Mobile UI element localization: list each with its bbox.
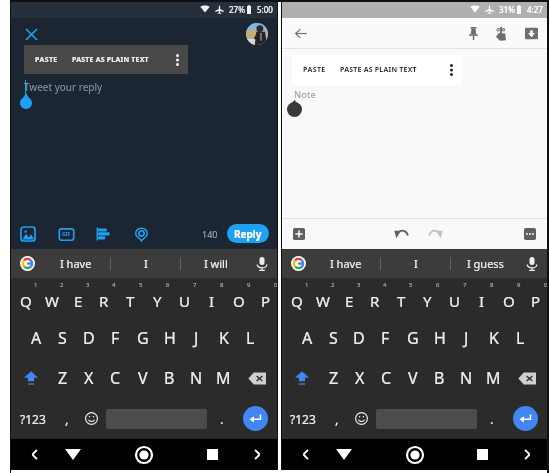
button[interactable]: Shift [282,358,321,398]
button[interactable]: 8 [466,278,493,318]
button[interactable]: 0 [250,278,277,318]
button[interactable]: I have [41,249,110,278]
button[interactable]: More options [440,55,462,85]
button[interactable]: 9 [223,278,250,318]
button[interactable]: Emoji [349,398,374,439]
button[interactable]: H [426,318,453,358]
button[interactable]: 5 [115,278,142,318]
button[interactable]: L [237,318,264,358]
button[interactable]: D [346,318,372,358]
button[interactable]: . [479,398,504,439]
button[interactable]: 4 [89,278,115,318]
button[interactable]: V [129,358,156,398]
button[interactable]: 1 [11,278,37,318]
button[interactable]: Close [20,23,43,46]
button[interactable]: Voice input [250,252,274,276]
button[interactable]: Add location [131,224,151,244]
button[interactable]: K [210,318,237,358]
button[interactable]: K [480,318,507,358]
button[interactable]: ?123 [11,398,54,439]
button[interactable]: Emoji [79,398,104,439]
button[interactable]: F [102,318,129,358]
button[interactable]: Space [104,398,209,439]
button[interactable]: 2 [37,278,63,318]
button[interactable]: Next [515,439,539,470]
button[interactable]: Previous [21,439,47,470]
button[interactable]: 1 [282,278,308,318]
button[interactable]: H [156,318,183,358]
button[interactable]: PASTE [24,45,69,74]
button[interactable]: Reply [227,224,269,243]
button[interactable]: J [453,318,480,358]
button[interactable]: 7 [169,278,196,318]
button[interactable]: Add poll [93,224,113,244]
button[interactable]: I guess [451,249,520,278]
button[interactable]: X [347,358,373,398]
button[interactable]: 3 [334,278,360,318]
button[interactable]: B [156,358,183,398]
button[interactable]: M [210,358,237,398]
button[interactable]: Add GIF [56,224,76,244]
button[interactable]: Back [59,439,87,470]
button[interactable]: 7 [439,278,466,318]
button[interactable]: Previous [292,439,318,470]
button[interactable]: N [183,358,210,398]
button[interactable]: 6 [412,278,439,318]
button[interactable]: J [183,318,210,358]
button[interactable]: A [294,318,320,358]
button[interactable]: Enter [234,398,277,439]
button[interactable]: A [23,318,49,358]
button[interactable]: S [320,318,346,358]
button[interactable]: Shift [11,358,50,398]
button[interactable]: B [426,358,453,398]
button[interactable]: Add [290,225,308,243]
button[interactable]: Z [50,358,76,398]
button[interactable]: C [102,358,129,398]
button[interactable]: More [521,225,539,243]
button[interactable]: Z [321,358,347,398]
button[interactable]: Space [374,398,479,439]
button[interactable]: Profile [246,23,268,45]
button[interactable]: Home [129,439,159,470]
button[interactable]: Redo [425,224,445,244]
button[interactable]: , [54,398,79,439]
button[interactable]: X [76,358,102,398]
button[interactable]: 6 [142,278,169,318]
button[interactable]: Voice input [520,252,544,276]
button[interactable]: ?123 [282,398,324,439]
button[interactable]: PASTE [292,55,337,85]
button[interactable]: G [129,318,156,358]
button[interactable]: Next [245,439,269,470]
button[interactable]: 2 [308,278,334,318]
button[interactable]: PASTE AS PLAIN TEXT [337,55,424,85]
button[interactable]: I [381,249,450,278]
button[interactable]: Back [330,439,358,470]
button[interactable]: 0 [520,278,547,318]
button[interactable]: I will [181,249,250,278]
button[interactable]: , [324,398,349,439]
button[interactable]: Home [400,439,430,470]
button[interactable]: 9 [493,278,520,318]
button[interactable]: G [399,318,426,358]
button[interactable]: 5 [386,278,412,318]
button[interactable]: I have [312,249,380,278]
button[interactable]: V [399,358,426,398]
button[interactable]: Back [290,22,312,44]
button[interactable]: 8 [196,278,223,318]
button[interactable]: Remind me [490,22,512,44]
button[interactable]: More options [166,45,188,74]
button[interactable]: M [480,358,507,398]
button[interactable]: . [209,398,234,439]
button[interactable]: C [373,358,399,398]
button[interactable]: L [507,318,534,358]
button[interactable]: Recents [469,439,495,470]
button[interactable]: Backspace [237,358,277,398]
button[interactable]: Pin [462,22,484,44]
button[interactable]: F [372,318,399,358]
button[interactable]: I [111,249,180,278]
button[interactable]: 3 [63,278,89,318]
button[interactable]: D [75,318,102,358]
button[interactable]: N [453,358,480,398]
button[interactable]: Add photo [18,224,38,244]
button[interactable]: Archive [520,22,542,44]
